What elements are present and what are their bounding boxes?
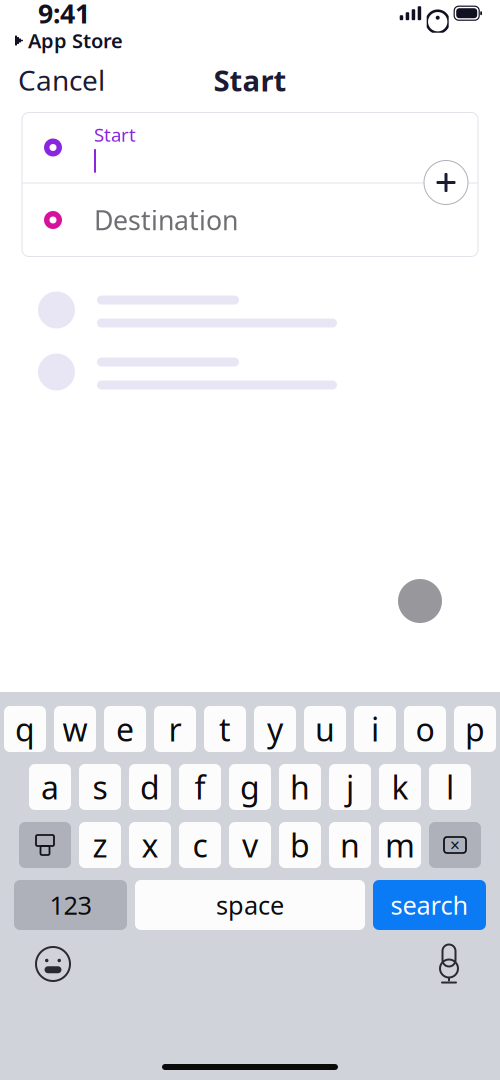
staticText: q	[15, 708, 35, 750]
button[interactable]: a	[29, 764, 71, 810]
staticText: 123	[49, 888, 91, 922]
button[interactable]: u	[304, 706, 346, 752]
button[interactable]: x	[129, 822, 171, 868]
button[interactable]: w	[54, 706, 96, 752]
staticText: Cancel	[18, 61, 105, 99]
staticText: f	[194, 766, 205, 808]
button[interactable]: f	[179, 764, 221, 810]
button[interactable]: g	[229, 764, 271, 810]
staticText: d	[140, 766, 160, 808]
button[interactable]: k	[379, 764, 421, 810]
staticText: k	[391, 766, 408, 808]
staticText: Start	[94, 122, 136, 147]
button[interactable]: y	[254, 706, 296, 752]
button[interactable]: search	[373, 880, 486, 930]
staticText: r	[168, 708, 181, 750]
button[interactable]: q	[4, 706, 46, 752]
button[interactable]: c	[179, 822, 221, 868]
button[interactable]: space	[135, 880, 365, 930]
button[interactable]: o	[404, 706, 446, 752]
staticText: x	[141, 824, 158, 866]
button[interactable]: Cancel	[0, 51, 123, 109]
staticText: e	[116, 708, 134, 750]
staticText: App Store	[28, 27, 123, 54]
staticText: b	[290, 824, 310, 866]
staticText: n	[340, 824, 360, 866]
button[interactable]: e	[104, 706, 146, 752]
button[interactable]: t	[204, 706, 246, 752]
button[interactable]: Destination	[22, 183, 478, 256]
button[interactable]: n	[329, 822, 371, 868]
staticText: z	[92, 824, 107, 866]
button[interactable]: h	[279, 764, 321, 810]
button[interactable]: z	[79, 822, 121, 868]
staticText: w	[62, 708, 87, 750]
button[interactable]: 123	[14, 880, 127, 930]
button[interactable]: b	[279, 822, 321, 868]
staticText: Start	[213, 60, 286, 99]
button[interactable]: r	[154, 706, 196, 752]
staticText: g	[240, 766, 260, 808]
staticText: Destination	[94, 202, 238, 238]
staticText: 9:41	[38, 0, 90, 31]
staticText: o	[415, 708, 434, 750]
button[interactable]: Shift	[19, 822, 71, 868]
staticText: h	[290, 766, 310, 808]
button[interactable]: d	[129, 764, 171, 810]
staticText: v	[242, 824, 258, 866]
button[interactable]: s	[79, 764, 121, 810]
staticText: a	[41, 766, 59, 808]
button[interactable]: m	[379, 822, 421, 868]
button[interactable]: Dictation	[436, 946, 500, 982]
staticText: m	[385, 824, 415, 866]
button[interactable]: v	[229, 822, 271, 868]
staticText: ×	[450, 833, 460, 856]
button[interactable]: p	[454, 706, 496, 752]
staticText: j	[346, 766, 354, 808]
staticText: u	[315, 708, 335, 750]
staticText: t	[219, 708, 231, 750]
button[interactable]: Emoji keyboard	[0, 947, 70, 981]
staticText: s	[92, 766, 107, 808]
button[interactable]: j	[329, 764, 371, 810]
button[interactable]: Delete	[429, 822, 481, 868]
staticText: space	[216, 888, 284, 922]
staticText: p	[465, 708, 485, 750]
button[interactable]: i	[354, 706, 396, 752]
button[interactable]: l	[429, 764, 471, 810]
staticText: y	[267, 708, 283, 750]
staticText: c	[192, 824, 207, 866]
staticText: search	[390, 888, 468, 922]
button[interactable]: Add stop	[424, 160, 468, 204]
staticText: i	[371, 708, 379, 750]
staticText: l	[446, 766, 454, 808]
